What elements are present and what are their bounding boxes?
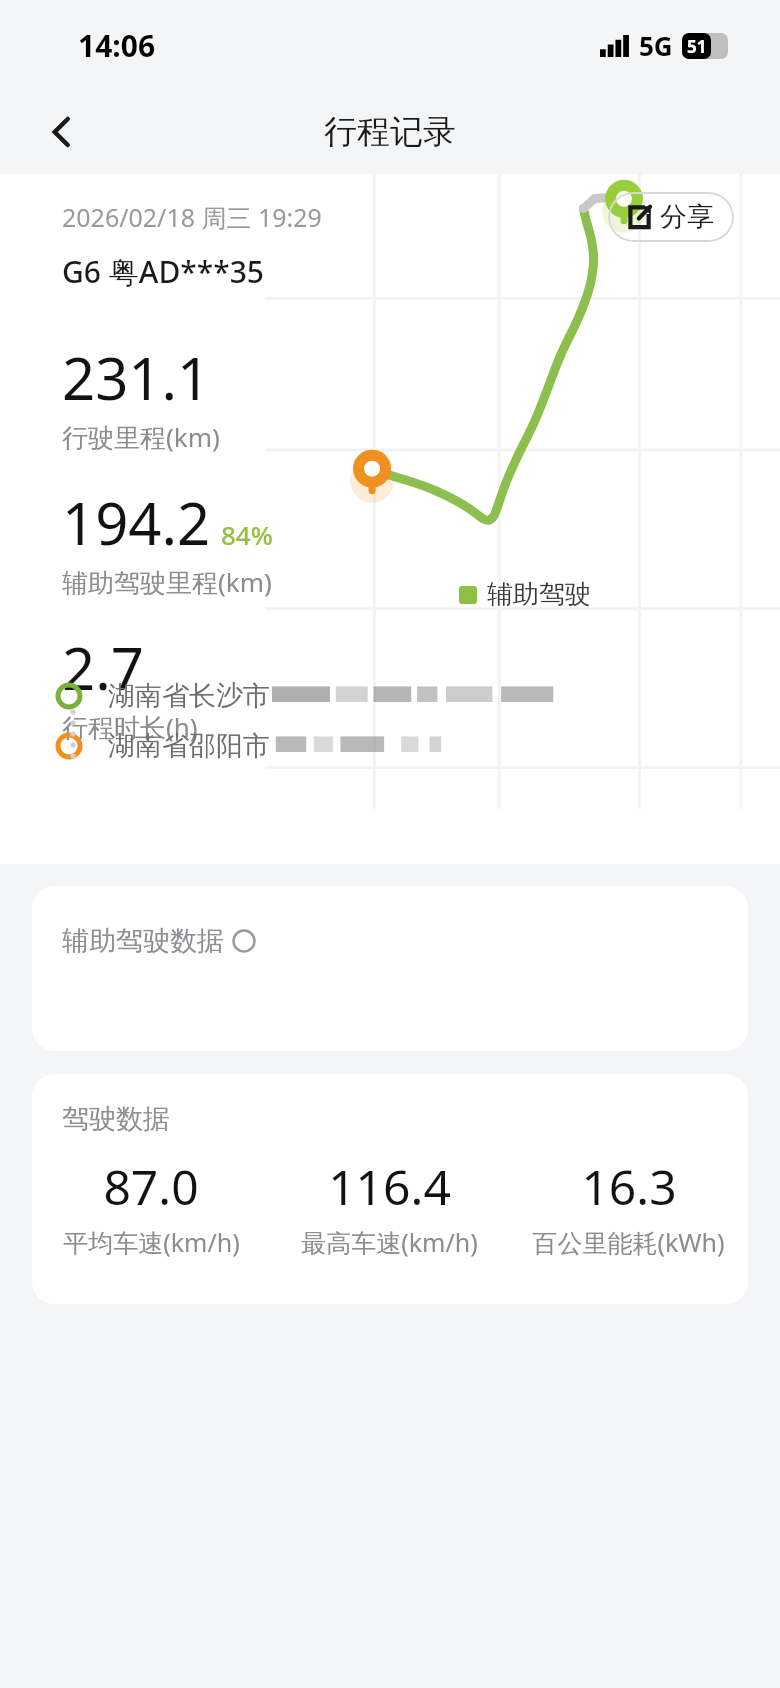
staticText: 平均车速(km/h): [63, 1225, 240, 1259]
button[interactable]: 湖南省长沙市: [56, 679, 780, 713]
staticText: 行程时长(h): [62, 709, 198, 745]
staticText: 最高车速(km/h): [301, 1225, 478, 1259]
button[interactable]: 分享: [608, 192, 734, 242]
staticText: 51: [687, 35, 707, 58]
staticText: 行驶里程(km): [62, 419, 220, 455]
staticText: 116.4: [328, 1154, 451, 1219]
staticText: 2.7: [62, 628, 144, 707]
staticText: 14:06: [78, 25, 156, 66]
staticText: 百公里能耗(kWh): [532, 1225, 725, 1259]
staticText: 行程记录: [324, 111, 456, 153]
staticText: 驾驶数据: [62, 1102, 170, 1136]
staticText: 分享: [660, 200, 714, 234]
staticText: 231.1: [62, 338, 211, 417]
button[interactable]: 湖南省邵阳市: [56, 729, 780, 763]
staticText: 194.2: [62, 483, 211, 562]
staticText: 辅助驾驶里程(km): [62, 564, 272, 600]
staticText: G6 粤AD***35: [62, 251, 264, 292]
staticText: 辅助驾驶: [487, 578, 591, 611]
button[interactable]: 辅助驾驶数据: [32, 886, 748, 1051]
staticText: 87.0: [103, 1154, 199, 1219]
staticText: 辅助驾驶数据: [62, 924, 224, 958]
staticText: 16.3: [581, 1154, 677, 1219]
staticText: 2026/02/18 周三 19:29: [62, 200, 322, 234]
staticText: 湖南省邵阳市: [108, 729, 270, 763]
staticText: 湖南省长沙市: [108, 679, 270, 713]
button[interactable]: Back: [36, 106, 88, 158]
staticText: 84%: [221, 517, 273, 552]
staticText: 5G: [639, 28, 673, 63]
